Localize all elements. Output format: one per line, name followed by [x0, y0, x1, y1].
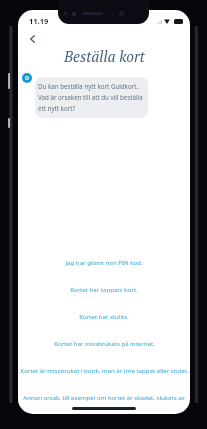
- staticText: Jag har glömt min PIN kod.: [65, 258, 143, 266]
- staticText: Annan orsak, till exempel om kortet är s…: [23, 393, 185, 401]
- button[interactable]: Kortet har tappats bort.: [18, 275, 190, 302]
- button[interactable]: Kortet är missbrukat i butik, men är int…: [18, 356, 190, 383]
- staticText: Kortet har missbrukats på internet.: [54, 339, 155, 347]
- button[interactable]: Annan orsak, till exempel om kortet är s…: [18, 383, 190, 410]
- staticText: Kortet är missbrukat i butik, men är int…: [20, 366, 189, 374]
- staticText: Kortet har tappats bort.: [70, 285, 138, 293]
- button[interactable]: Kortet har stulits.: [18, 302, 190, 329]
- staticText: Kortet har stulits.: [79, 312, 129, 320]
- staticText: Du kan beställa nytt kort Guldkort. Vad …: [38, 82, 145, 113]
- staticText: Beställa kort: [64, 46, 145, 66]
- button[interactable]: Back: [21, 28, 43, 50]
- button[interactable]: Kortet har missbrukats på internet.: [18, 329, 190, 356]
- staticText: 11.19: [29, 16, 49, 26]
- button[interactable]: Jag har glömt min PIN kod.: [18, 248, 190, 275]
